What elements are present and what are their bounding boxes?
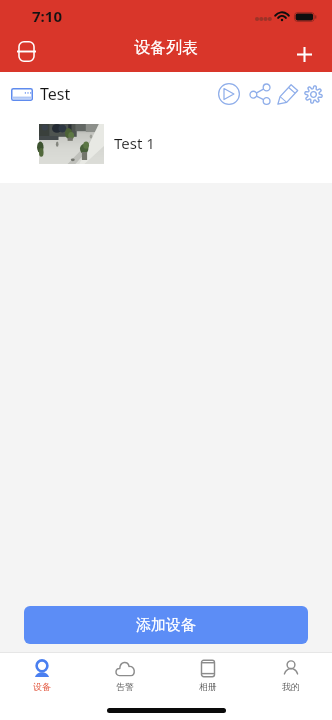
- staticText: 7:10: [32, 6, 62, 26]
- button[interactable]: Settings: [299, 77, 327, 111]
- staticText: 我的: [282, 681, 300, 692]
- staticText: 设备: [33, 681, 51, 692]
- button[interactable]: Menu: [6, 31, 47, 71]
- button[interactable]: Edit: [271, 77, 299, 111]
- staticText: 告警: [116, 681, 134, 692]
- button[interactable]: Test: [0, 72, 332, 115]
- button[interactable]: 我的: [249, 653, 332, 698]
- button[interactable]: 添加设备: [24, 606, 308, 644]
- staticText: Test: [40, 83, 71, 105]
- staticText: 添加设备: [136, 616, 196, 635]
- button[interactable]: Add device: [284, 34, 324, 74]
- button[interactable]: Share: [243, 77, 271, 111]
- button[interactable]: 告警: [83, 653, 166, 698]
- staticText: Test 1: [114, 133, 155, 153]
- staticText: 设备列表: [134, 38, 198, 58]
- button[interactable]: 设备: [0, 653, 83, 698]
- staticText: 相册: [199, 681, 217, 692]
- button[interactable]: 相册: [166, 653, 249, 698]
- button[interactable]: Play: [215, 77, 243, 111]
- button[interactable]: Test 1: [0, 115, 332, 183]
